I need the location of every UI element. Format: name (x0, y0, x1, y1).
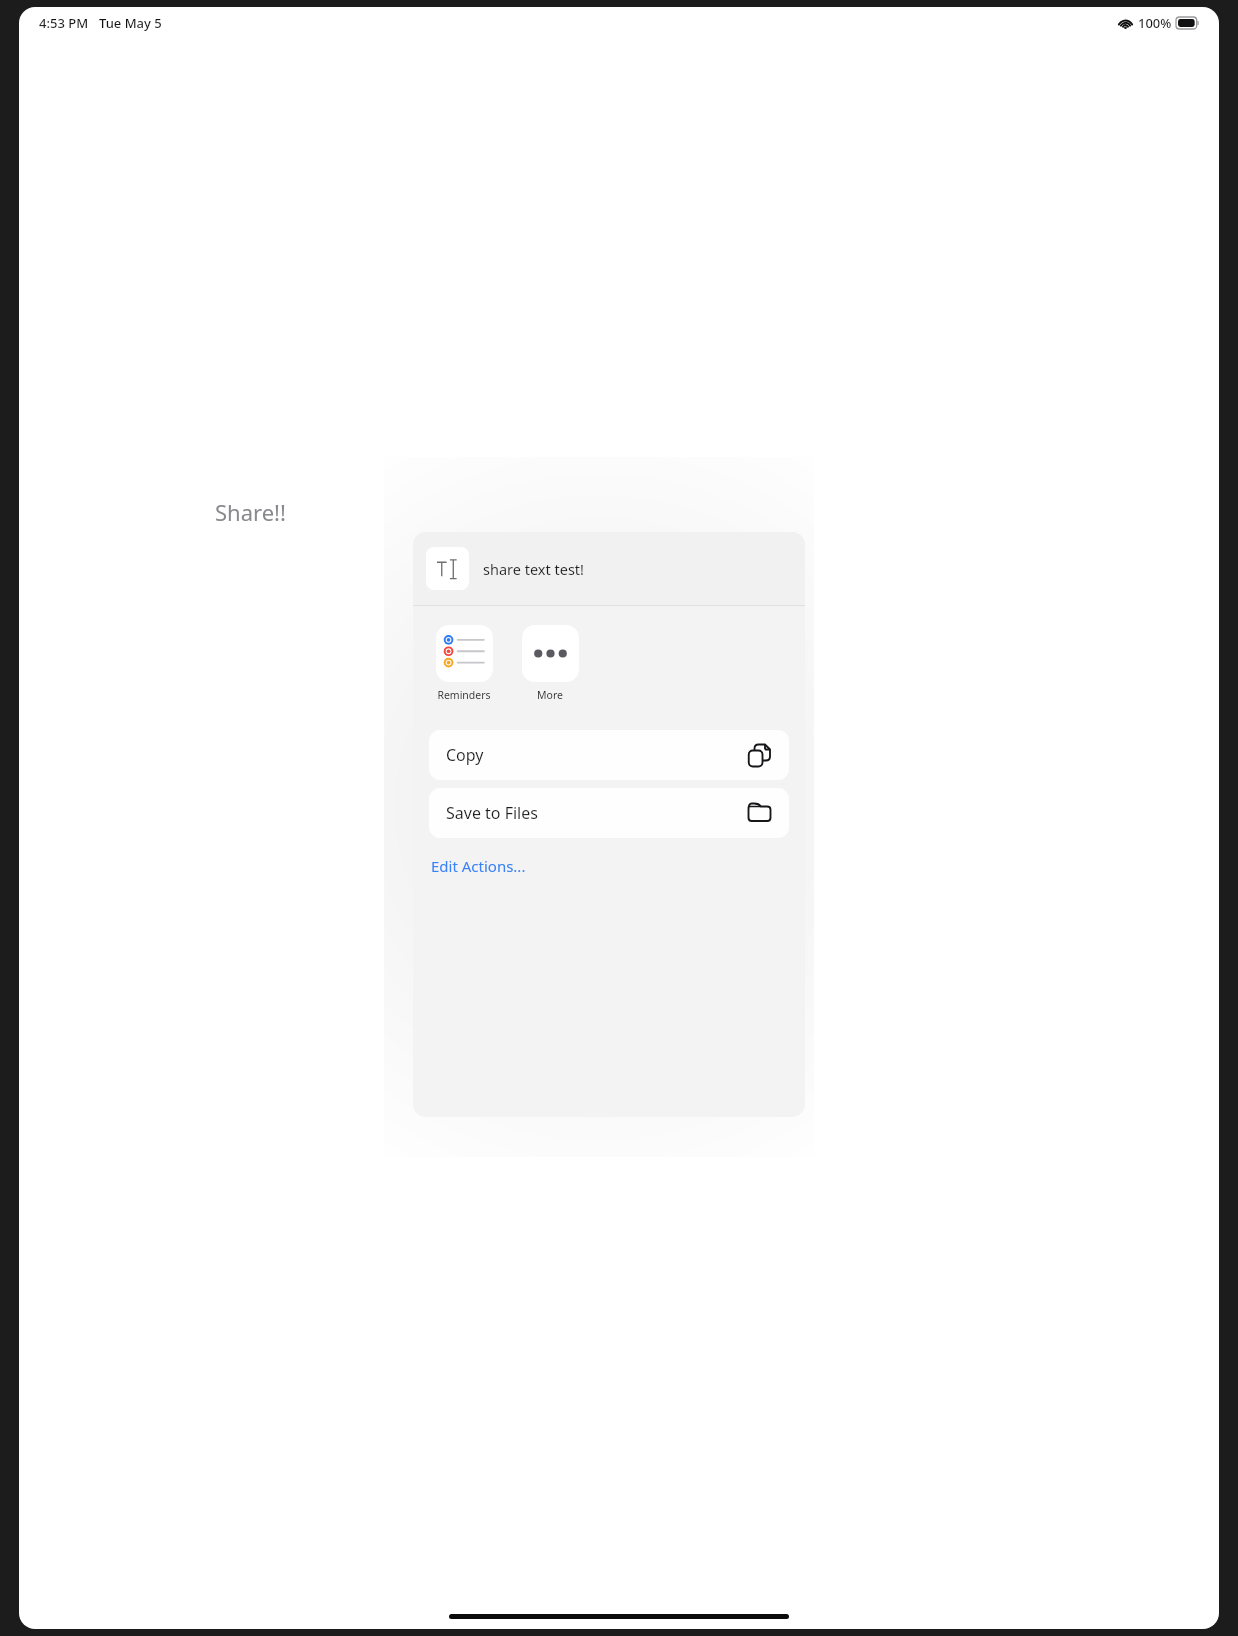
staticText: Share!! (215, 497, 286, 527)
staticText: 100% (1138, 14, 1172, 32)
staticText: 4:53 PM (39, 14, 89, 32)
button[interactable]: Save to Files (429, 788, 789, 838)
staticText: Copy (446, 744, 484, 766)
staticText: share text test! (483, 559, 584, 579)
staticText: Reminders (437, 688, 491, 702)
staticText: More (537, 688, 563, 702)
button[interactable]: More (518, 625, 582, 702)
button[interactable]: Edit Actions... (429, 852, 528, 880)
staticText: Save to Files (446, 802, 538, 824)
button[interactable]: share text test! (413, 532, 805, 605)
staticText: Tue May 5 (99, 14, 162, 32)
button[interactable]: Reminders (432, 625, 496, 702)
staticText: Edit Actions... (431, 856, 526, 876)
button[interactable]: Copy (429, 730, 789, 780)
